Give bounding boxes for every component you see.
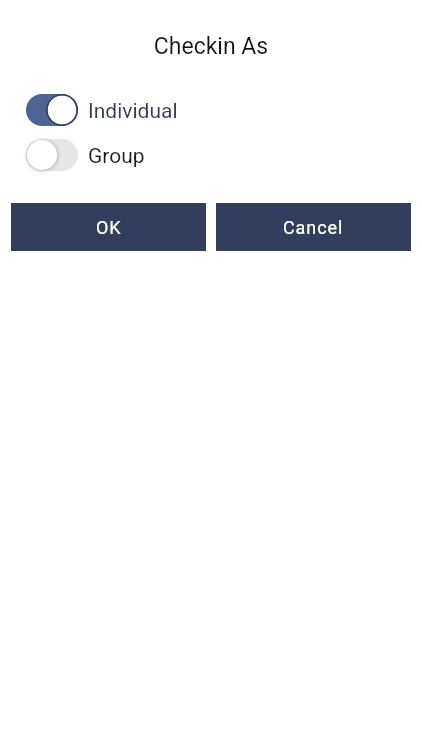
staticText: Cancel — [283, 217, 344, 238]
button[interactable]: Individual selected — [0, 94, 422, 126]
staticText: Checkin As — [0, 33, 422, 60]
staticText: Group — [88, 144, 145, 169]
button[interactable]: Cancel — [216, 203, 411, 251]
button[interactable]: Group not selected — [26, 139, 78, 171]
staticText: OK — [96, 217, 122, 238]
button[interactable]: Individual selected — [26, 94, 78, 126]
button[interactable]: OK — [11, 203, 206, 251]
button[interactable]: Group not selected — [0, 139, 422, 171]
staticText: Individual — [88, 99, 178, 124]
